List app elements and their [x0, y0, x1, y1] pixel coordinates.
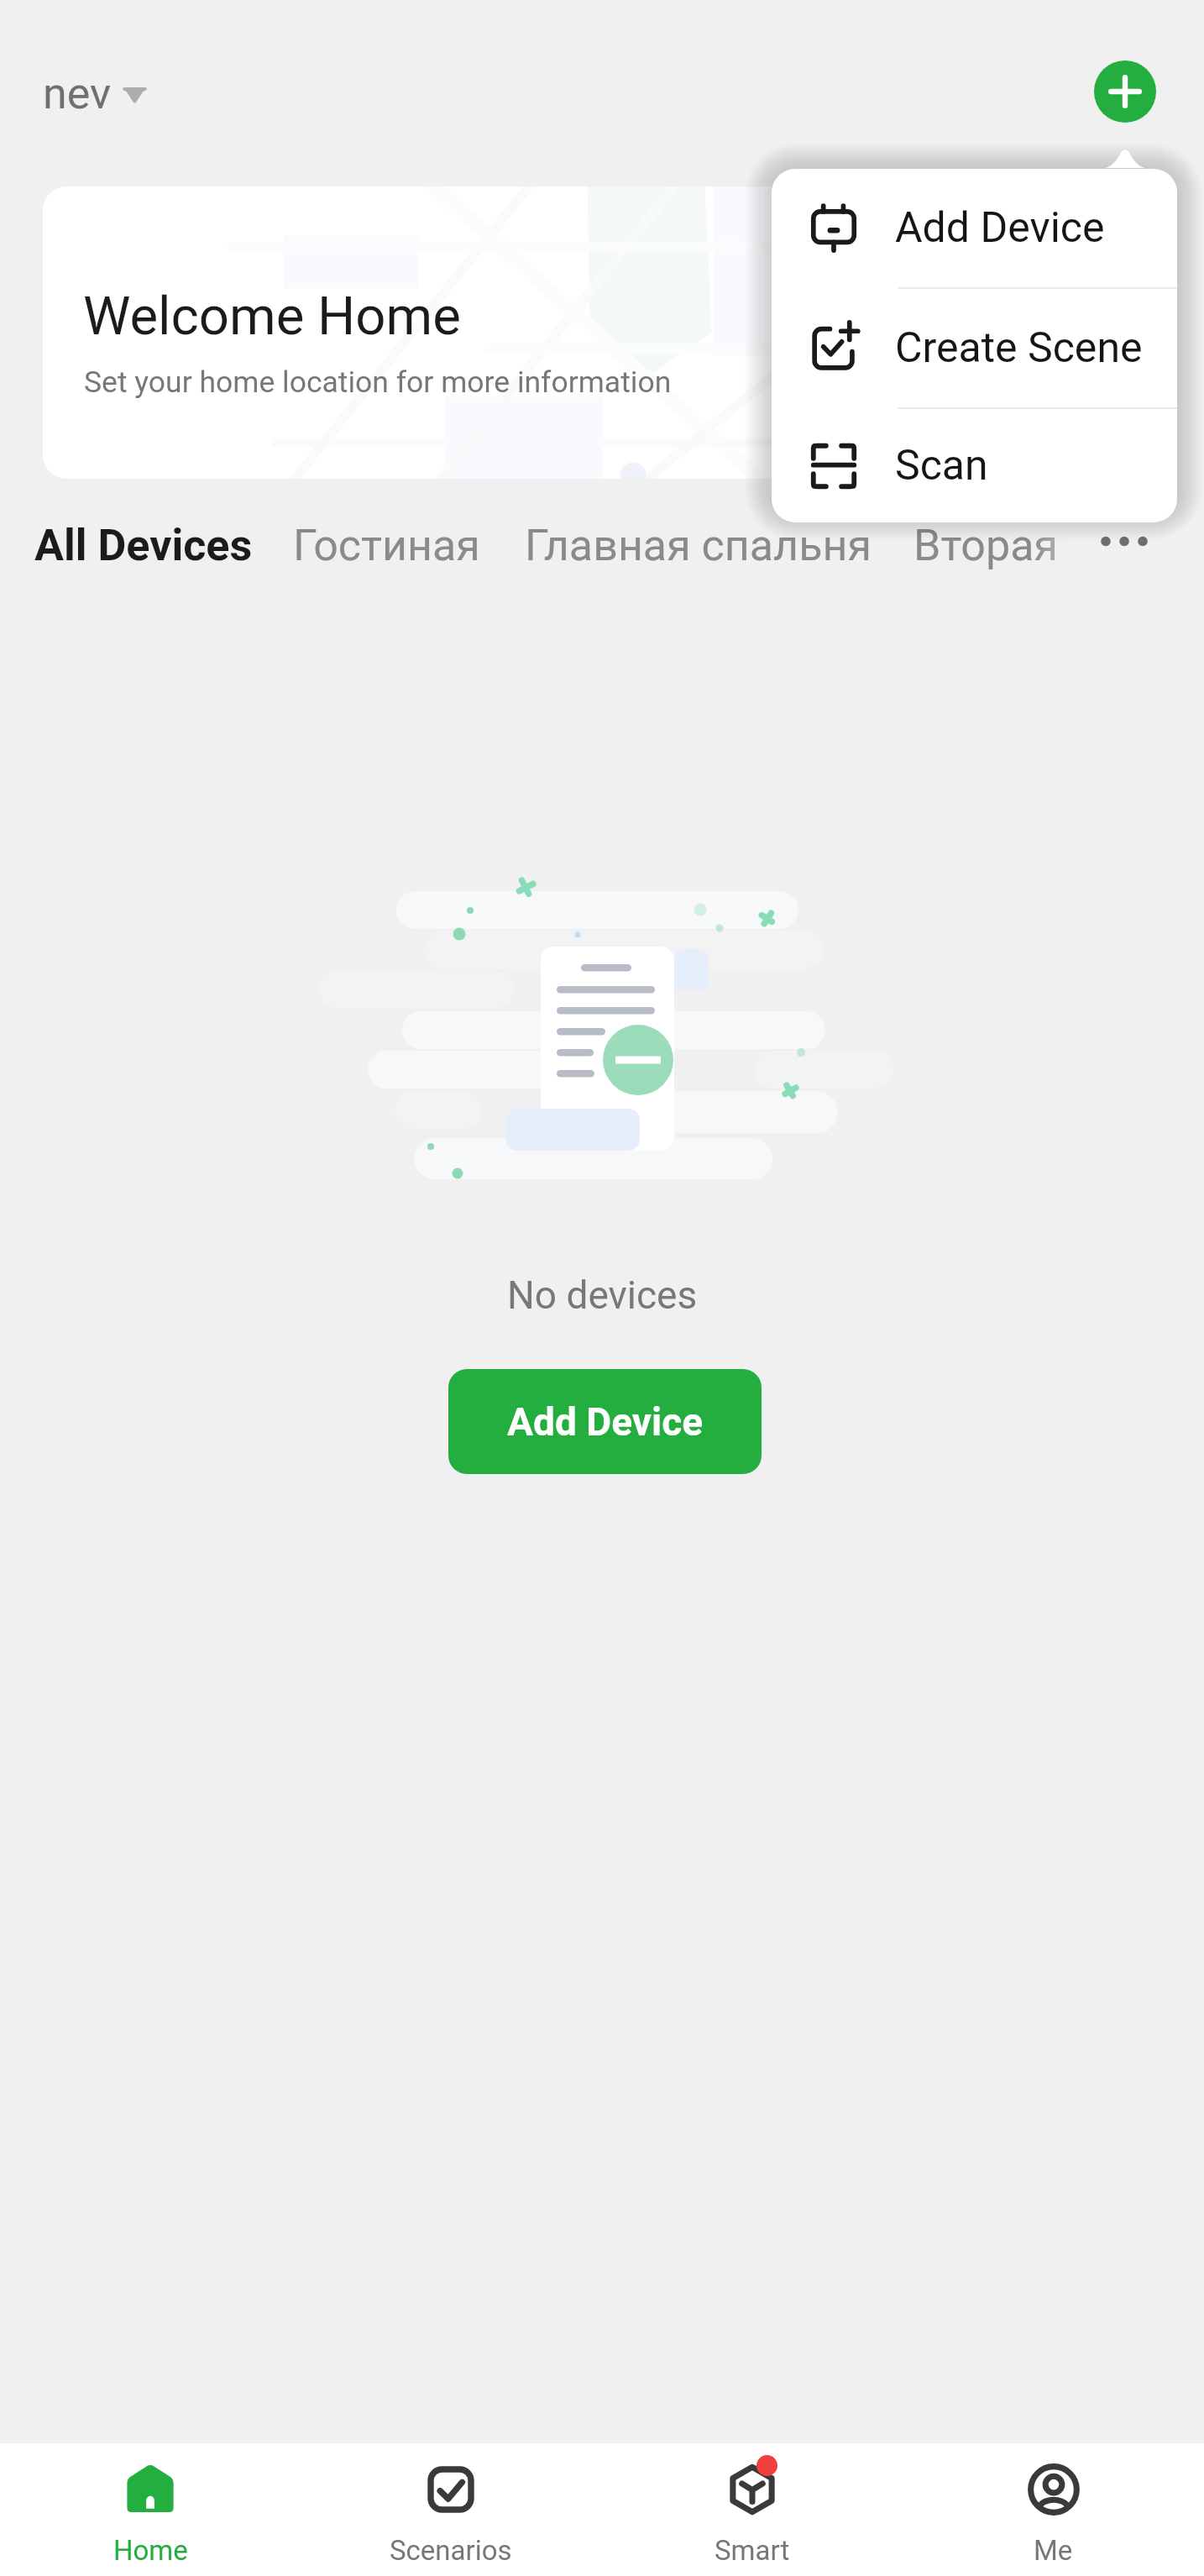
staticText: Me [1034, 2534, 1073, 2567]
button[interactable]: Вторая [913, 509, 1059, 581]
button[interactable]: More rooms [1085, 504, 1162, 581]
button[interactable]: Add Device [448, 1369, 762, 1474]
staticText: nev [43, 68, 112, 119]
button[interactable]: Create Scene [772, 289, 1177, 407]
staticText: All Devices [34, 520, 253, 571]
button[interactable]: Scenarios [301, 2443, 601, 2576]
button[interactable]: Главная спальня [525, 509, 913, 581]
staticText: Create Scene [895, 323, 1143, 373]
staticText: Set your home location for more informat… [84, 365, 672, 400]
staticText: Scenarios [390, 2534, 512, 2567]
staticText: Add Device [895, 203, 1105, 253]
button[interactable]: nev [39, 63, 151, 124]
button[interactable]: Welcome Home [43, 186, 1161, 479]
staticText: Вторая [913, 520, 1059, 571]
staticText: Scan [895, 441, 988, 491]
button[interactable]: Scan [772, 409, 1177, 522]
button[interactable]: Smart [601, 2443, 903, 2576]
button[interactable]: All Devices [34, 509, 293, 581]
button[interactable]: Me [903, 2443, 1204, 2576]
staticText: No devices [507, 1272, 698, 1318]
button[interactable]: Add Device [772, 169, 1177, 287]
staticText: Home [113, 2534, 188, 2567]
button[interactable]: Гостиная [293, 509, 525, 581]
staticText: Главная спальня [525, 520, 872, 571]
button[interactable]: Home [0, 2443, 301, 2576]
staticText: Add Device [507, 1399, 704, 1445]
staticText: Smart [715, 2534, 790, 2567]
staticText: Гостиная [293, 520, 480, 571]
button[interactable]: Add [1094, 60, 1156, 123]
staticText: Welcome Home [83, 285, 461, 347]
